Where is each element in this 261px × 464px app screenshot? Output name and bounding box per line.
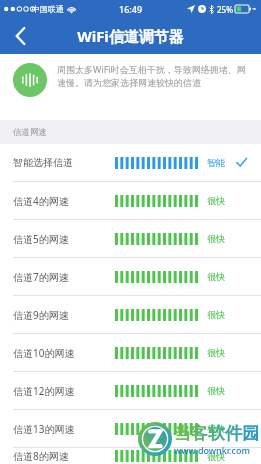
staticText: 智能选择信道 (13, 156, 73, 169)
staticText: 很快 (207, 423, 225, 434)
staticText: 很快 (207, 233, 225, 244)
staticText: 很快 (207, 271, 225, 282)
staticText: WiFi信道调节器 (77, 26, 184, 46)
button[interactable]: 信道7的网速 (0, 258, 261, 295)
staticText: 信道10的网速 (13, 346, 75, 360)
button[interactable]: 信道12的网速 (0, 372, 261, 409)
button[interactable]: Back (0, 18, 40, 54)
staticText: 很快 (207, 451, 225, 462)
staticText: 信道4的网速 (13, 194, 69, 208)
button[interactable]: 信道5的网速 (0, 220, 261, 257)
staticText: 很快 (207, 347, 225, 358)
staticText: 信道5的网速 (13, 232, 69, 246)
staticText: 当客软件园 (174, 423, 259, 444)
staticText: 很快 (207, 195, 225, 206)
staticText: www.downkr.com (174, 444, 250, 456)
staticText: 智能 (207, 157, 225, 168)
button[interactable]: 信道9的网速 (0, 296, 261, 333)
staticText: 25% (217, 4, 233, 15)
button[interactable]: 信道4的网速 (0, 182, 261, 219)
staticText: 信道9的网速 (13, 308, 69, 322)
staticText: 16:49 (119, 3, 143, 15)
staticText: 中国联通 (32, 4, 64, 14)
staticText: ⌁ (252, 5, 257, 13)
button[interactable]: 信道8的网速 (0, 448, 261, 464)
staticText: 信道7的网速 (13, 270, 69, 284)
staticText: 很快 (207, 309, 225, 320)
button[interactable]: 信道13的网速 (0, 410, 261, 447)
button[interactable]: 智能选择信道 (0, 144, 261, 181)
button[interactable]: 信道10的网速 (0, 334, 261, 371)
staticText: 周围太多WiFi时会互相干扰，导致网络拥堵、网速慢。请为您家选择网速较快的信道 (57, 63, 251, 88)
staticText: 很快 (207, 385, 225, 396)
staticText: 信道8的网速 (13, 449, 69, 463)
staticText: 信道12的网速 (13, 384, 75, 398)
staticText: 信道13的网速 (13, 422, 75, 436)
staticText: 信道网速 (13, 127, 47, 138)
